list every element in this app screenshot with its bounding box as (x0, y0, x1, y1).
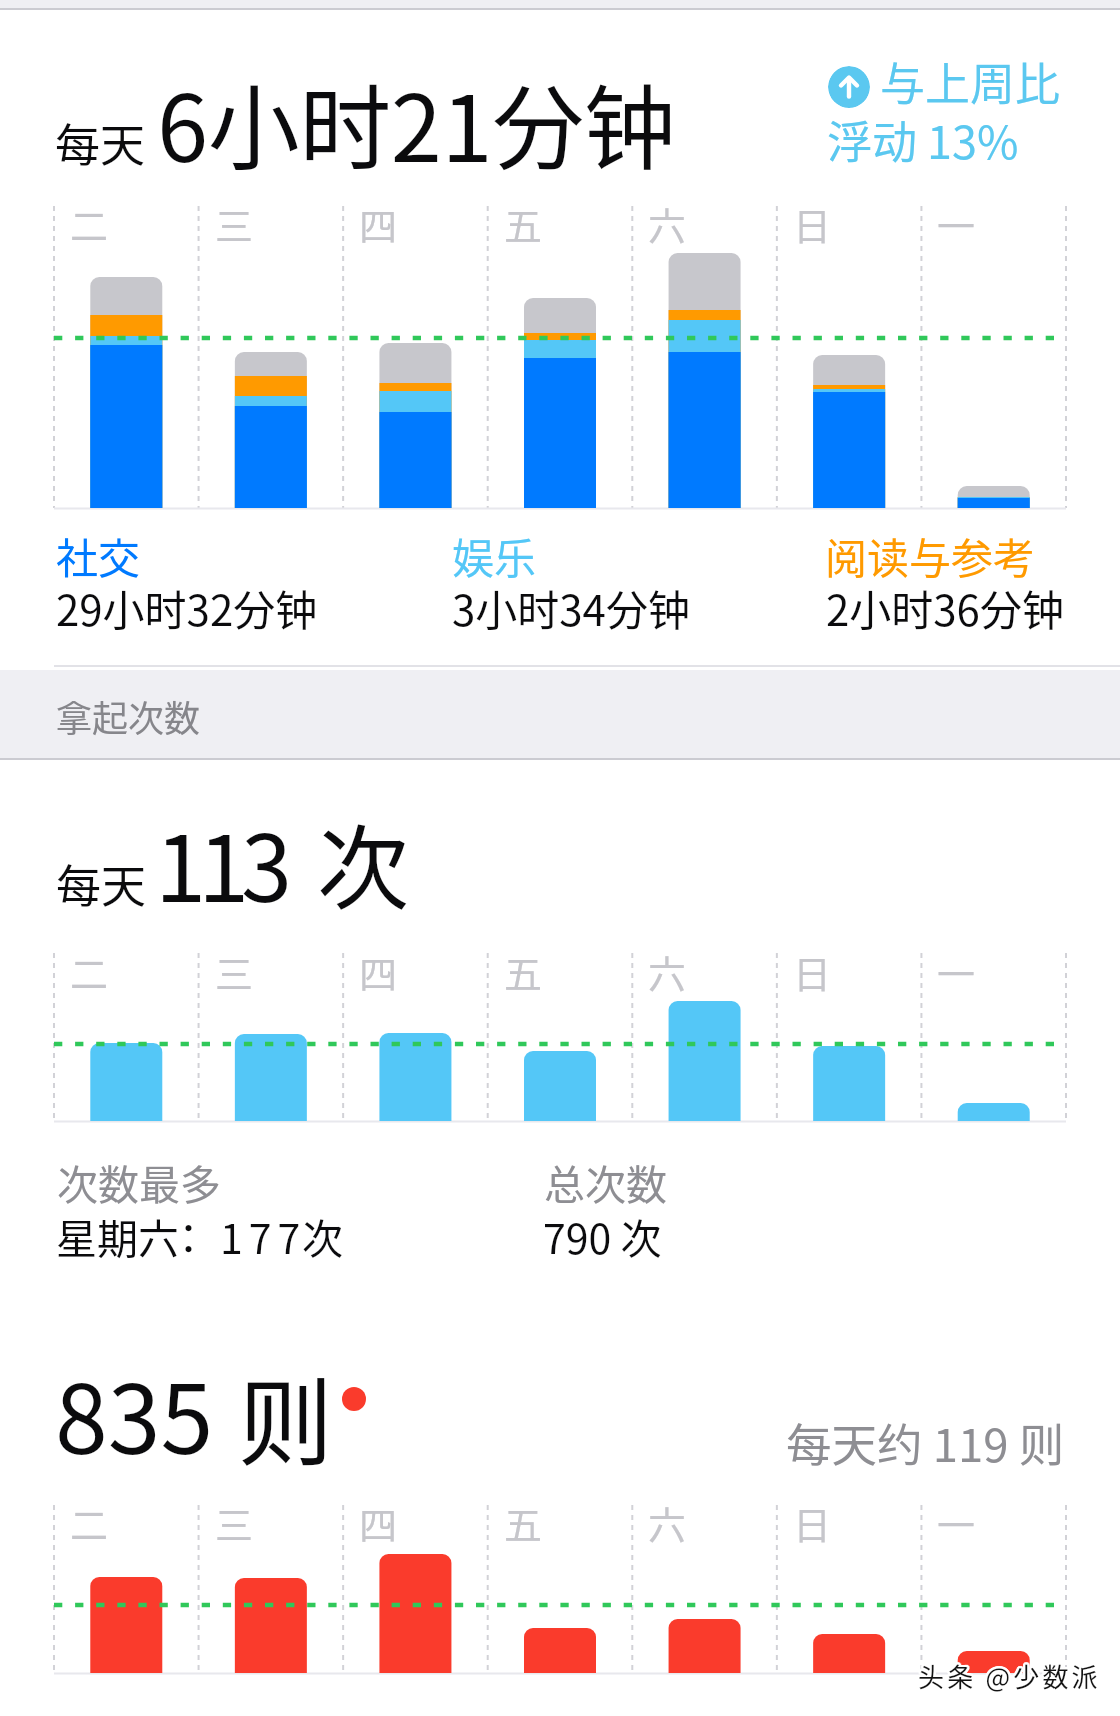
staticText: 一 (937, 1495, 976, 1550)
staticText: 次 (317, 795, 410, 928)
staticText: 总次数 (544, 1152, 667, 1211)
staticText: 头条 @少数派 (916, 1658, 1099, 1696)
staticText: 二 (70, 1495, 109, 1550)
staticText: 113 (155, 795, 285, 928)
staticText: 三 (215, 1495, 254, 1550)
staticText: 则 (238, 1348, 334, 1486)
button[interactable] (0, 670, 1120, 759)
button[interactable]: 通知详情 (0, 1330, 1120, 1716)
staticText: 2小时36分钟 (826, 577, 1064, 638)
staticText: 头条 @少数派 (917, 1659, 1100, 1697)
staticText: 四 (359, 1495, 398, 1550)
staticText: 次数最多 (57, 1152, 221, 1211)
staticText: 头条 @少数派 (918, 1656, 1101, 1694)
staticText: 头条 @少数派 (918, 1658, 1101, 1696)
staticText: 头条 @少数派 (919, 1657, 1102, 1695)
staticText: 头条 @少数派 (918, 1659, 1101, 1697)
staticText: 娱乐 (452, 525, 537, 586)
staticText: 头条 @少数派 (920, 1656, 1103, 1694)
staticText: 头条 @少数派 (917, 1655, 1100, 1693)
staticText: 日 (793, 944, 832, 999)
staticText: 阅读与参考 (825, 525, 1036, 586)
staticText: 头条 @少数派 (919, 1656, 1102, 1694)
staticText: 头条 @少数派 (918, 1655, 1101, 1693)
staticText: 一 (937, 944, 976, 999)
staticText: 6小时21分钟 (157, 55, 676, 188)
staticText: 星期六 (56, 1206, 179, 1265)
staticText: 四 (359, 944, 398, 999)
staticText: 浮动 13% (827, 107, 1019, 172)
staticText: 头条 @少数派 (916, 1657, 1099, 1695)
staticText: 日 (793, 196, 832, 251)
staticText: 二 (70, 196, 109, 251)
staticText: 五 (504, 1495, 543, 1550)
staticText: 每天 (56, 851, 147, 916)
staticText: 拿起次数 (56, 690, 201, 742)
staticText: 头条 @少数派 (917, 1656, 1100, 1694)
staticText: 177 (220, 1206, 307, 1265)
staticText: 三 (215, 196, 254, 251)
staticText: 头条 @少数派 (919, 1659, 1102, 1697)
staticText: 一 (937, 196, 976, 251)
button[interactable]: 屏幕使用时间详情 (0, 10, 1120, 665)
staticText: 五 (504, 944, 543, 999)
staticText: 头条 @少数派 (920, 1658, 1103, 1696)
button[interactable]: 拿起次数详情 (0, 760, 1120, 1320)
staticText: 3小时34分钟 (452, 577, 690, 638)
staticText: 头条 @少数派 (916, 1656, 1099, 1694)
staticText: 社交 (56, 525, 141, 586)
staticText: 29小时32分钟 (56, 577, 318, 638)
staticText: 五 (504, 196, 543, 251)
staticText: 六 (648, 944, 687, 999)
staticText: 四 (359, 196, 398, 251)
staticText: 790 次 (543, 1206, 662, 1265)
staticText: 与上周比 (880, 49, 1061, 114)
button[interactable]: 与上周比上升 (828, 66, 870, 108)
staticText: ： (168, 1206, 209, 1265)
staticText: 头条 @少数派 (917, 1658, 1100, 1696)
staticText: 六 (648, 196, 687, 251)
staticText: 头条 @少数派 (919, 1655, 1102, 1693)
staticText: 头条 @少数派 (919, 1658, 1102, 1696)
staticText: 二 (70, 944, 109, 999)
staticText: 六 (648, 1495, 687, 1550)
staticText: 头条 @少数派 (918, 1657, 1101, 1695)
staticText: 头条 @少数派 (917, 1657, 1100, 1695)
staticText: 835 (55, 1344, 214, 1482)
staticText: 次 (302, 1206, 343, 1265)
staticText: 日 (793, 1495, 832, 1550)
staticText: 每天约 119 则 (786, 1409, 1065, 1475)
staticText: 每天 (55, 110, 146, 175)
staticText: 头条 @少数派 (920, 1657, 1103, 1695)
staticText: 三 (215, 944, 254, 999)
